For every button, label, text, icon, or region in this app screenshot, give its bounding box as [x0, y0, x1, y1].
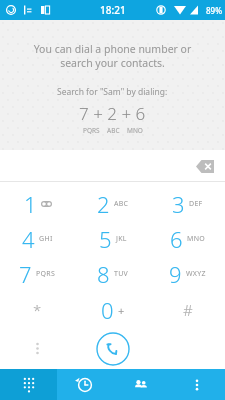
staticText: DEF	[189, 199, 203, 209]
staticText: 7	[19, 259, 32, 289]
button[interactable]: 1	[0, 186, 75, 221]
staticText: 0	[101, 295, 114, 325]
staticText: You can dial a phone number or search yo…	[16, 42, 209, 70]
button[interactable]: More options	[169, 369, 225, 400]
staticText: 2	[97, 189, 110, 219]
staticText: Search for "Sam" by dialing:	[57, 86, 168, 98]
staticText: WXYZ	[186, 269, 206, 279]
button[interactable]: 4	[0, 221, 75, 256]
button[interactable]: Dialpad	[0, 369, 57, 400]
button[interactable]: #	[150, 292, 225, 328]
staticText: 89%	[206, 5, 222, 16]
staticText: GHI	[39, 234, 53, 244]
button[interactable]: *	[0, 292, 75, 328]
button[interactable]: 8	[75, 256, 150, 292]
staticText: +	[118, 303, 125, 318]
staticText: 6	[170, 224, 183, 254]
staticText: MNO	[127, 126, 143, 135]
button[interactable]: Recents	[57, 369, 113, 400]
staticText: 1	[24, 189, 37, 219]
staticText: TUV	[114, 269, 129, 279]
staticText: 9	[169, 259, 182, 289]
button[interactable]: 5	[75, 221, 150, 256]
button[interactable]: 2	[75, 186, 150, 221]
staticText: ABC	[107, 126, 120, 135]
staticText: MNO	[187, 234, 206, 244]
staticText: ABC	[114, 199, 129, 209]
button[interactable]: Call	[95, 331, 131, 367]
staticText: PQRS	[36, 269, 56, 279]
button[interactable]: 3	[150, 186, 225, 221]
staticText: 7 + 2 + 6	[79, 102, 146, 125]
staticText: 4	[22, 224, 35, 254]
staticText: PQRS	[83, 126, 100, 135]
staticText: *	[33, 300, 42, 320]
staticText: #	[183, 300, 193, 320]
button[interactable]: 7	[0, 256, 75, 292]
button[interactable]: 6	[150, 221, 225, 256]
staticText: 3	[172, 189, 185, 219]
button[interactable]: 0	[75, 292, 150, 328]
button[interactable]: 9	[150, 256, 225, 292]
staticText: JKL	[116, 234, 127, 244]
button[interactable]: Backspace	[193, 156, 219, 176]
staticText: 18:21	[100, 3, 126, 17]
button[interactable]: Contacts	[113, 369, 169, 400]
staticText: 8	[97, 259, 110, 289]
staticText: 5	[99, 224, 112, 254]
